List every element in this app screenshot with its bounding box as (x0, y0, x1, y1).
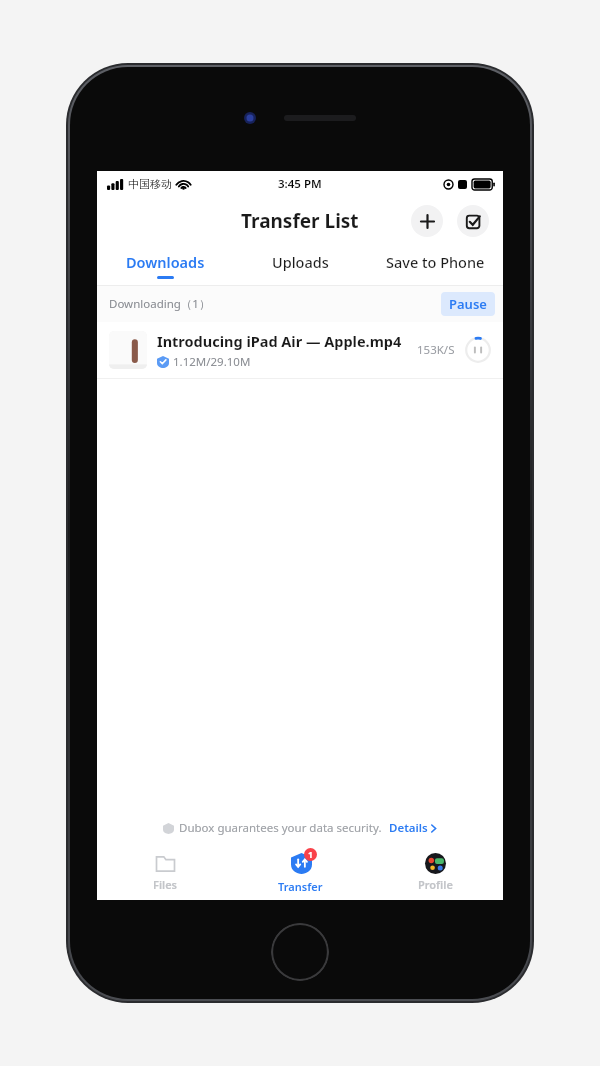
staticText: 1 (308, 849, 313, 861)
staticText: Uploads (272, 252, 329, 272)
button[interactable]: Add transfer (411, 205, 443, 237)
button[interactable]: Save to Phone (368, 245, 503, 285)
staticText: Details (389, 820, 428, 836)
staticText: 3:45 PM (278, 176, 322, 192)
button[interactable]: Pause download (465, 337, 491, 363)
button[interactable]: Introducing iPad Air — Apple.mp4 (97, 322, 503, 378)
staticText: Save to Phone (386, 252, 485, 272)
staticText: Profile (418, 877, 453, 892)
other: Home (271, 923, 329, 981)
button[interactable]: Pause (441, 292, 495, 316)
staticText: 1.12M/29.10M (173, 354, 251, 370)
staticText: 153K/S (417, 342, 455, 358)
button[interactable]: Select items (457, 205, 489, 237)
staticText: Transfer List (241, 208, 359, 234)
button[interactable]: Profile (368, 844, 503, 900)
other: Files (155, 853, 176, 874)
button[interactable]: Details (389, 820, 437, 836)
staticText: Dubox guarantees your data security. (179, 820, 382, 836)
staticText: Introducing iPad Air — Apple.mp4 (157, 331, 402, 351)
other: Profile (425, 853, 446, 874)
button[interactable]: Downloads (97, 245, 233, 285)
staticText: Files (153, 877, 178, 892)
staticText: Downloads (126, 252, 205, 272)
other: Transfer (291, 853, 312, 874)
button[interactable]: Uploads (233, 245, 368, 285)
button[interactable]: Transfer (233, 844, 368, 900)
button[interactable]: Files (97, 844, 233, 900)
staticText: Pause (449, 295, 487, 313)
staticText: 中国移动 (128, 177, 172, 191)
staticText: Downloading（1） (109, 296, 211, 312)
staticText: Transfer (278, 879, 323, 894)
